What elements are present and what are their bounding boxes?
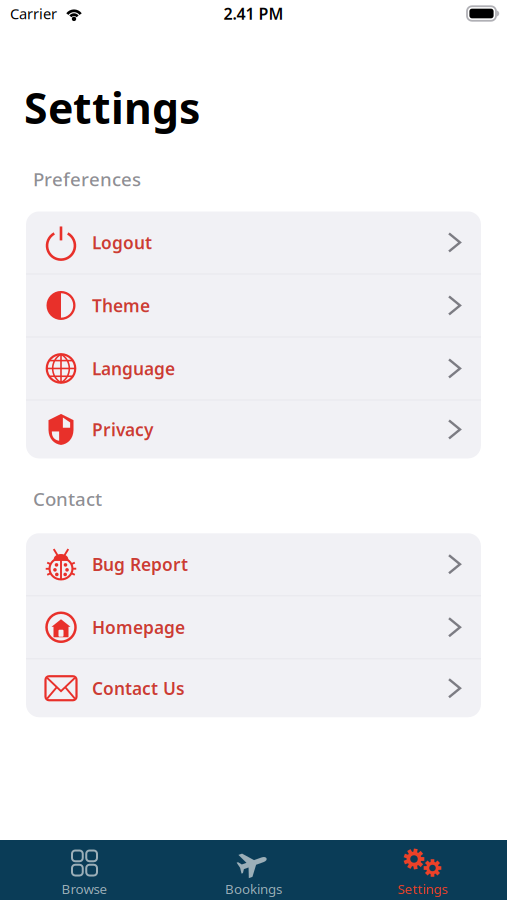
button[interactable]: Theme [26, 274, 481, 337]
button[interactable]: Homepage [26, 596, 481, 659]
staticText: Settings [24, 79, 200, 136]
staticText: Carrier [10, 4, 57, 23]
staticText: Bookings [225, 880, 282, 898]
button[interactable]: Language [26, 337, 481, 400]
staticText: Contact Us [92, 677, 185, 700]
button[interactable]: Browse [0, 850, 169, 898]
staticText: Theme [92, 294, 150, 317]
button[interactable]: Bug Report [26, 533, 481, 596]
button[interactable]: Bookings [169, 850, 338, 898]
button[interactable]: Privacy [26, 400, 481, 458]
staticText: 2.41 PM [223, 3, 283, 24]
staticText: Logout [92, 231, 152, 254]
staticText: Settings [397, 880, 447, 898]
button[interactable]: Logout [26, 211, 481, 274]
staticText: Privacy [92, 418, 153, 441]
staticText: Preferences [33, 167, 141, 191]
staticText: Bug Report [92, 553, 188, 576]
button[interactable]: Settings [338, 850, 507, 898]
staticText: Browse [61, 880, 107, 898]
staticText: Homepage [92, 616, 185, 639]
staticText: Language [92, 357, 175, 380]
button[interactable]: Contact Us [26, 659, 481, 717]
staticText: Contact [33, 486, 102, 511]
